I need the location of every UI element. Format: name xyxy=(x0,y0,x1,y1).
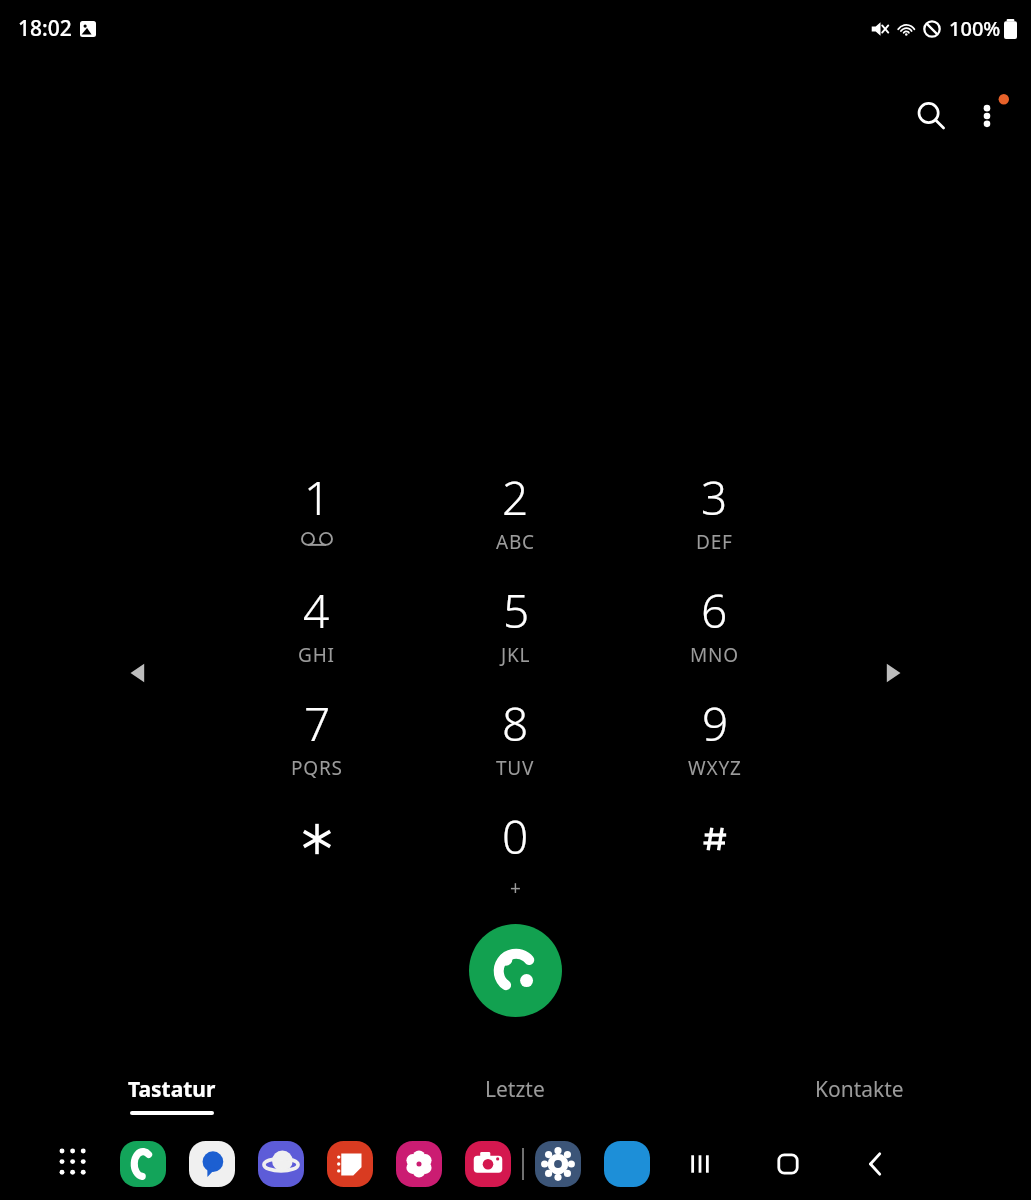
button[interactable]: Camera xyxy=(464,1140,512,1188)
button[interactable]: Tastatur xyxy=(0,1062,343,1124)
staticText: 4 xyxy=(303,579,330,642)
button[interactable]: 3 xyxy=(615,466,814,579)
staticText: TUV xyxy=(496,755,535,781)
button[interactable]: 9 xyxy=(615,692,814,805)
staticText: 7 xyxy=(304,692,331,755)
button[interactable]: Back xyxy=(853,1141,899,1187)
staticText: + xyxy=(510,875,521,901)
button[interactable]: Internet xyxy=(257,1140,305,1188)
staticText: 5 xyxy=(503,579,530,642)
button[interactable]: 8 xyxy=(416,692,615,805)
staticText: 8 xyxy=(502,692,529,755)
button[interactable] xyxy=(217,805,416,918)
button[interactable]: 7 xyxy=(217,692,416,805)
button[interactable]: Settings xyxy=(534,1140,582,1188)
button[interactable]: Notes xyxy=(326,1140,374,1188)
button[interactable]: Apps xyxy=(52,1141,98,1187)
button[interactable]: 6 xyxy=(615,579,814,692)
button[interactable]: 0 xyxy=(416,805,615,918)
button[interactable]: Messages xyxy=(188,1140,236,1188)
staticText: 0 xyxy=(502,805,529,868)
button[interactable]: Search xyxy=(903,88,959,144)
button[interactable]: Gallery xyxy=(395,1140,443,1188)
staticText: Kontakte xyxy=(815,1075,904,1104)
button[interactable]: Next page xyxy=(871,651,915,695)
staticText: Letzte xyxy=(485,1075,545,1104)
button[interactable]: Home xyxy=(765,1141,811,1187)
button[interactable]: 2 xyxy=(416,466,615,579)
button[interactable]: 1 xyxy=(217,466,416,579)
staticText: JKL xyxy=(501,642,531,668)
staticText: WXYZ xyxy=(688,755,742,781)
button[interactable]: 4 xyxy=(217,579,416,692)
staticText: 2 xyxy=(502,466,529,529)
button[interactable]: 5 xyxy=(416,579,615,692)
staticText: GHI xyxy=(298,642,335,668)
button[interactable]: Phone xyxy=(119,1140,167,1188)
button[interactable]: Kontakte xyxy=(687,1062,1031,1124)
staticText: 100% xyxy=(949,15,1001,42)
button[interactable]: More options xyxy=(959,88,1015,144)
staticText: DEF xyxy=(696,529,733,555)
staticText: 9 xyxy=(702,692,729,755)
button[interactable]: Recents xyxy=(677,1141,723,1187)
button[interactable]: Call xyxy=(469,924,562,1017)
staticText: 3 xyxy=(701,466,728,529)
staticText: 18:02 xyxy=(18,14,72,43)
staticText: Tastatur xyxy=(128,1075,216,1104)
button[interactable] xyxy=(615,805,814,918)
button[interactable]: Previous page xyxy=(116,651,160,695)
staticText: ABC xyxy=(496,529,535,555)
button[interactable]: Letzte xyxy=(343,1062,687,1124)
staticText: MNO xyxy=(690,642,739,668)
staticText: 6 xyxy=(701,579,728,642)
button[interactable]: Basemark GPU xyxy=(603,1140,651,1188)
staticText: 1 xyxy=(304,466,331,529)
staticText: PQRS xyxy=(291,755,343,781)
